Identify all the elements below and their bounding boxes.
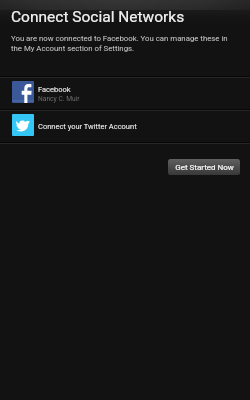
staticText: Get Started Now	[175, 163, 234, 172]
staticText: Facebook	[38, 85, 71, 94]
button[interactable]: Get Started Now	[168, 159, 240, 175]
button[interactable]: Connect your Twitter Account	[0, 111, 250, 142]
staticText: Connect Social Networks	[11, 8, 185, 26]
staticText: Connect your Twitter Account	[38, 122, 137, 131]
button[interactable]: Facebook	[0, 78, 250, 109]
staticText: Nancy C. Muir	[38, 95, 80, 103]
staticText: You are now connected to Facebook. You c…	[11, 34, 228, 53]
